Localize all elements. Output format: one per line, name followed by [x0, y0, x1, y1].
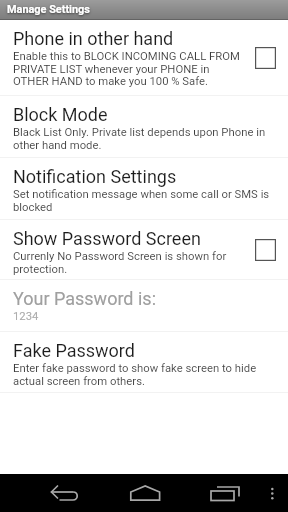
- staticText: Your Password is:: [13, 288, 156, 309]
- staticText: Fake Password: [13, 340, 135, 361]
- button[interactable]: Notification Settings: [0, 158, 288, 219]
- staticText: Manage Settings: [7, 3, 90, 16]
- staticText: 1234: [13, 310, 39, 323]
- button[interactable]: Back: [44, 474, 84, 512]
- button[interactable]: Your Password is:: [0, 280, 288, 331]
- button[interactable]: Recent apps: [206, 474, 246, 512]
- button[interactable]: Home: [126, 474, 164, 512]
- button[interactable]: Phone in other hand: [255, 47, 276, 69]
- staticText: Phone in other hand: [13, 28, 174, 49]
- staticText: Block Mode: [13, 104, 108, 125]
- button[interactable]: Phone in other hand: [0, 20, 288, 95]
- staticText: Notification Settings: [13, 166, 177, 187]
- staticText: Black List Only. Private list depends up…: [13, 126, 275, 152]
- button[interactable]: More options: [262, 474, 284, 512]
- staticText: Enter fake password to show fake screen …: [13, 362, 275, 388]
- staticText: Currenly No Password Screen is shown for…: [13, 250, 244, 276]
- staticText: Enable this to BLOCK INCOMING CALL FROM …: [13, 50, 244, 88]
- button[interactable]: Show Password Screen: [255, 239, 276, 261]
- staticText: Set notification message when some call …: [13, 188, 275, 214]
- staticText: Show Password Screen: [13, 228, 201, 249]
- button[interactable]: Fake Password: [0, 332, 288, 392]
- button[interactable]: Show Password Screen: [0, 220, 288, 279]
- button[interactable]: Block Mode: [0, 96, 288, 157]
